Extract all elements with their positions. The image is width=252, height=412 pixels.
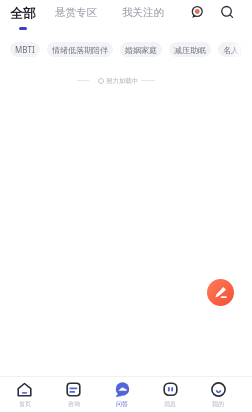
button[interactable]: 我的 (194, 382, 242, 408)
button[interactable]: 问答 (98, 382, 146, 408)
button[interactable]: 减压助眠 (169, 42, 211, 57)
staticText: 我关注的 (122, 6, 164, 19)
button[interactable]: 咨询 (49, 382, 98, 408)
staticText: 努力加载中 (106, 77, 139, 85)
button[interactable]: 首页 (0, 382, 49, 408)
staticText: 名人面对面 (223, 45, 247, 55)
staticText: 我的 (212, 400, 224, 408)
button[interactable]: Search (220, 5, 234, 19)
staticText: 情绪低落期陪伴 (52, 45, 108, 55)
button[interactable]: 消息 (146, 382, 194, 408)
staticText: 减压助眠 (174, 45, 206, 55)
button[interactable]: 全部 (10, 5, 36, 30)
button[interactable]: Write post (207, 279, 234, 306)
staticText: 消息 (164, 400, 176, 408)
staticText: 问答 (116, 400, 128, 408)
button[interactable]: 悬赏专区 (55, 6, 97, 19)
button[interactable]: 名人面对面 (218, 42, 252, 57)
staticText: 悬赏专区 (55, 6, 97, 19)
button[interactable]: 婚姻家庭 (120, 42, 162, 57)
staticText: MBTI (15, 44, 35, 55)
staticText: 全部 (10, 5, 36, 21)
button[interactable]: Messages (190, 5, 204, 19)
staticText: 咨询 (68, 400, 80, 408)
staticText: 首页 (19, 400, 31, 408)
staticText: 婚姻家庭 (125, 45, 157, 55)
button[interactable]: 我关注的 (122, 6, 164, 19)
button[interactable]: 情绪低落期陪伴 (47, 42, 113, 57)
button[interactable]: MBTI (10, 42, 40, 57)
